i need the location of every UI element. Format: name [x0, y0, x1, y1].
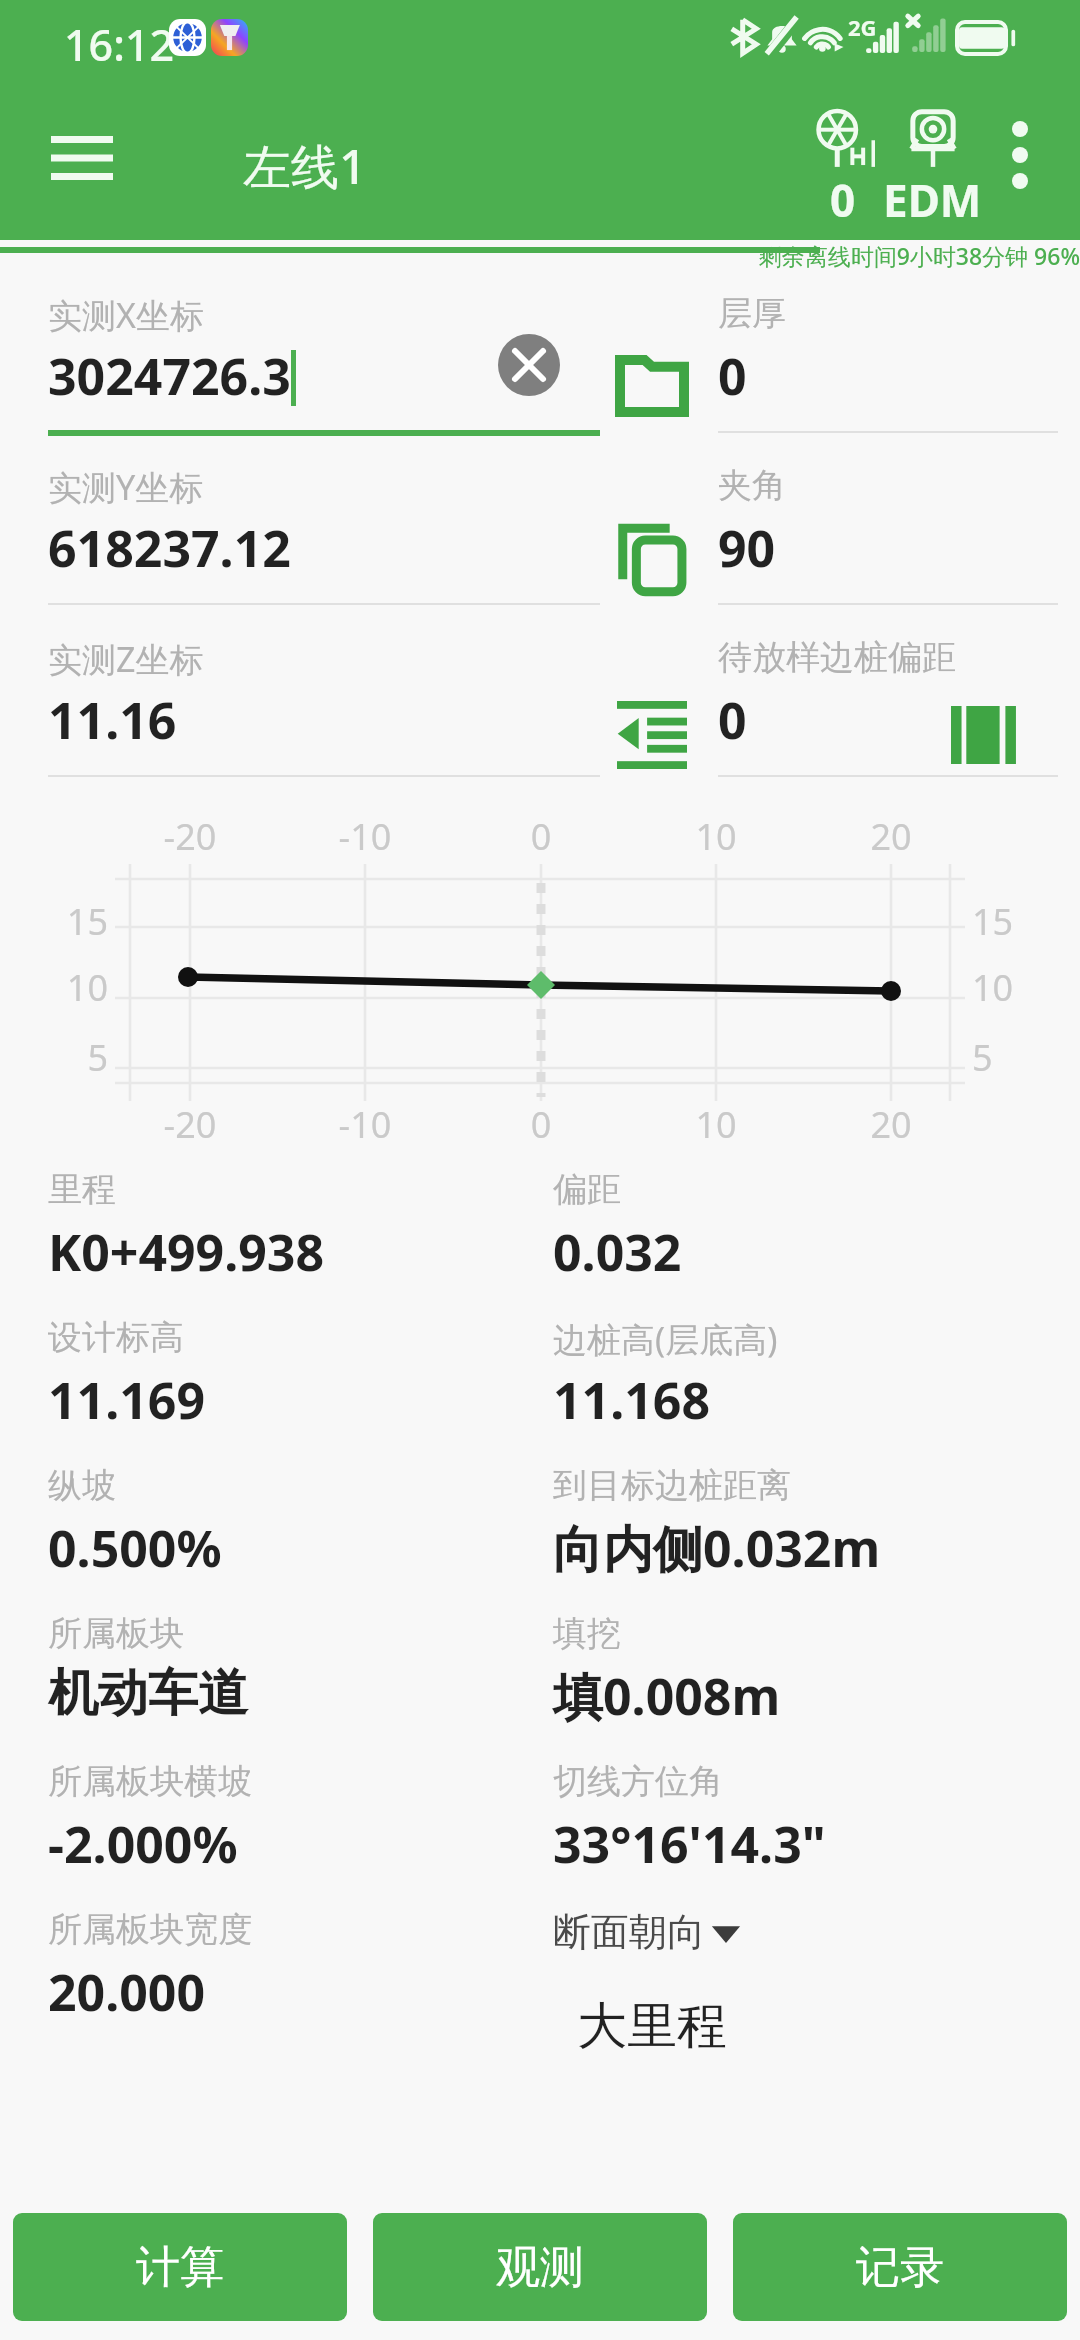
- button[interactable]: Prism height: [795, 108, 890, 230]
- staticText: 所属板块: [48, 1612, 184, 1655]
- staticText: K0+499.938: [48, 1218, 325, 1286]
- staticText: 断面朝向: [553, 1908, 705, 1956]
- staticText: 15: [972, 897, 1042, 946]
- staticText: 11.16: [48, 686, 177, 754]
- staticText: 0: [830, 170, 856, 230]
- staticText: -2.000%: [48, 1810, 238, 1878]
- staticText: -10: [305, 812, 425, 861]
- staticText: 5: [38, 1033, 108, 1082]
- staticText: 实测Y坐标: [48, 464, 204, 510]
- staticText: 10: [38, 963, 108, 1012]
- staticText: -10: [305, 1100, 425, 1149]
- staticText: 计算: [136, 2240, 224, 2295]
- staticText: 机动车道: [48, 1662, 248, 1725]
- staticText: 左线1: [243, 133, 367, 199]
- staticText: 11.169: [48, 1366, 206, 1434]
- staticText: 填挖: [553, 1612, 621, 1655]
- staticText: 10: [656, 812, 776, 861]
- staticText: 16:12: [64, 15, 175, 74]
- staticText: 15: [38, 897, 108, 946]
- button[interactable]: Columns: [930, 686, 1040, 784]
- staticText: 90: [718, 514, 776, 582]
- staticText: EDM: [883, 170, 982, 230]
- staticText: 实测Z坐标: [48, 636, 204, 682]
- staticText: 所属板块横坡: [48, 1760, 252, 1803]
- staticText: 剩余离线时间9小时38分钟 96%: [700, 240, 1080, 271]
- button[interactable]: Clear text: [498, 334, 560, 396]
- staticText: 5: [972, 1033, 1042, 1082]
- staticText: 0.500%: [48, 1514, 222, 1582]
- staticText: 618237.12: [48, 514, 291, 582]
- button[interactable]: Open file: [600, 340, 704, 432]
- staticText: 20: [831, 1100, 951, 1149]
- staticText: 观测: [496, 2240, 584, 2295]
- staticText: 20.000: [48, 1958, 206, 2026]
- staticText: 0: [481, 1100, 601, 1149]
- button[interactable]: 断面朝向: [553, 1908, 741, 1956]
- staticText: 0.032: [553, 1218, 682, 1286]
- staticText: 记录: [856, 2240, 944, 2295]
- staticText: 偏距: [553, 1168, 621, 1211]
- staticText: 向内侧0.032m: [553, 1514, 881, 1582]
- staticText: 实测X坐标: [48, 292, 204, 338]
- staticText: 20: [831, 812, 951, 861]
- staticText: 边桩高(层底高): [553, 1316, 778, 1362]
- staticText: 11.168: [553, 1366, 711, 1434]
- staticText: 里程: [48, 1168, 116, 1211]
- staticText: 切线方位角: [553, 1760, 723, 1803]
- staticText: 10: [972, 963, 1042, 1012]
- staticText: 33°16'14.3": [553, 1810, 826, 1878]
- staticText: 0: [718, 686, 747, 754]
- staticText: -20: [130, 1100, 250, 1149]
- staticText: 填0.008m: [553, 1662, 781, 1730]
- staticText: 设计标高: [48, 1316, 184, 1359]
- staticText: 层厚: [718, 292, 786, 335]
- button[interactable]: Copy: [600, 508, 704, 612]
- staticText: 0: [481, 812, 601, 861]
- button[interactable]: More options: [965, 100, 1075, 210]
- staticText: 3024726.3: [48, 342, 291, 410]
- staticText: 所属板块宽度: [48, 1908, 252, 1951]
- button[interactable]: Indent: [600, 686, 704, 784]
- button[interactable]: 计算: [13, 2213, 347, 2321]
- staticText: 纵坡: [48, 1464, 116, 1507]
- button[interactable]: EDM: [865, 108, 1000, 230]
- staticText: 10: [656, 1100, 776, 1149]
- staticText: 到目标边桩距离: [553, 1464, 791, 1507]
- staticText: 夹角: [718, 464, 786, 507]
- staticText: 2G: [848, 12, 877, 42]
- button[interactable]: 记录: [733, 2213, 1067, 2321]
- button[interactable]: Menu: [22, 108, 142, 208]
- staticText: 大里程: [577, 1995, 727, 2058]
- staticText: -20: [130, 812, 250, 861]
- staticText: 0: [718, 342, 747, 410]
- button[interactable]: 观测: [373, 2213, 707, 2321]
- staticText: 待放样边桩偏距: [718, 636, 956, 679]
